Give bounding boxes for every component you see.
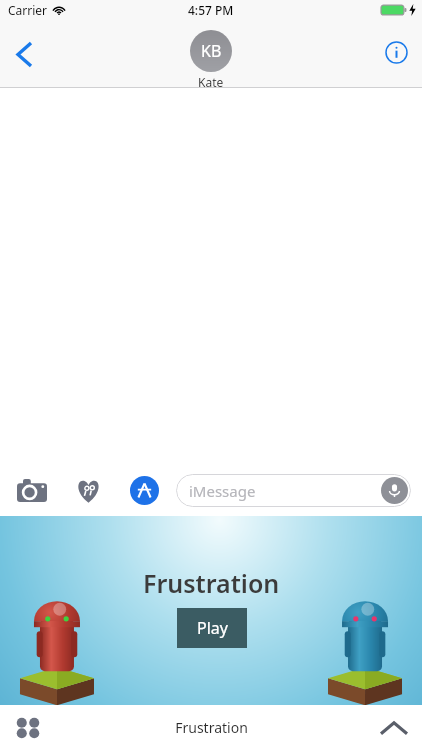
button[interactable]: Dictate [381,477,408,504]
staticText: Carrier [8,2,48,18]
button[interactable]: Back [2,32,46,76]
button[interactable]: App drawer [6,706,50,750]
staticText: Kate [198,74,224,90]
button[interactable]: App Store [124,470,164,510]
staticText: 4:57 PM [188,2,234,18]
staticText: Frustration [143,566,280,600]
staticText: Play [197,617,228,639]
button[interactable]: Play [177,608,247,648]
button[interactable]: Expand [372,706,416,750]
staticText: Frustration [175,718,248,737]
staticText: iMessage [189,481,256,501]
button[interactable]: iMessage [176,474,411,507]
button[interactable]: Details [376,32,416,72]
button[interactable]: Frustration [0,516,422,705]
button[interactable]: Camera [12,470,52,510]
button[interactable]: KB [190,30,232,90]
button[interactable]: Digital Touch [68,470,108,510]
staticText: KB [201,40,222,62]
